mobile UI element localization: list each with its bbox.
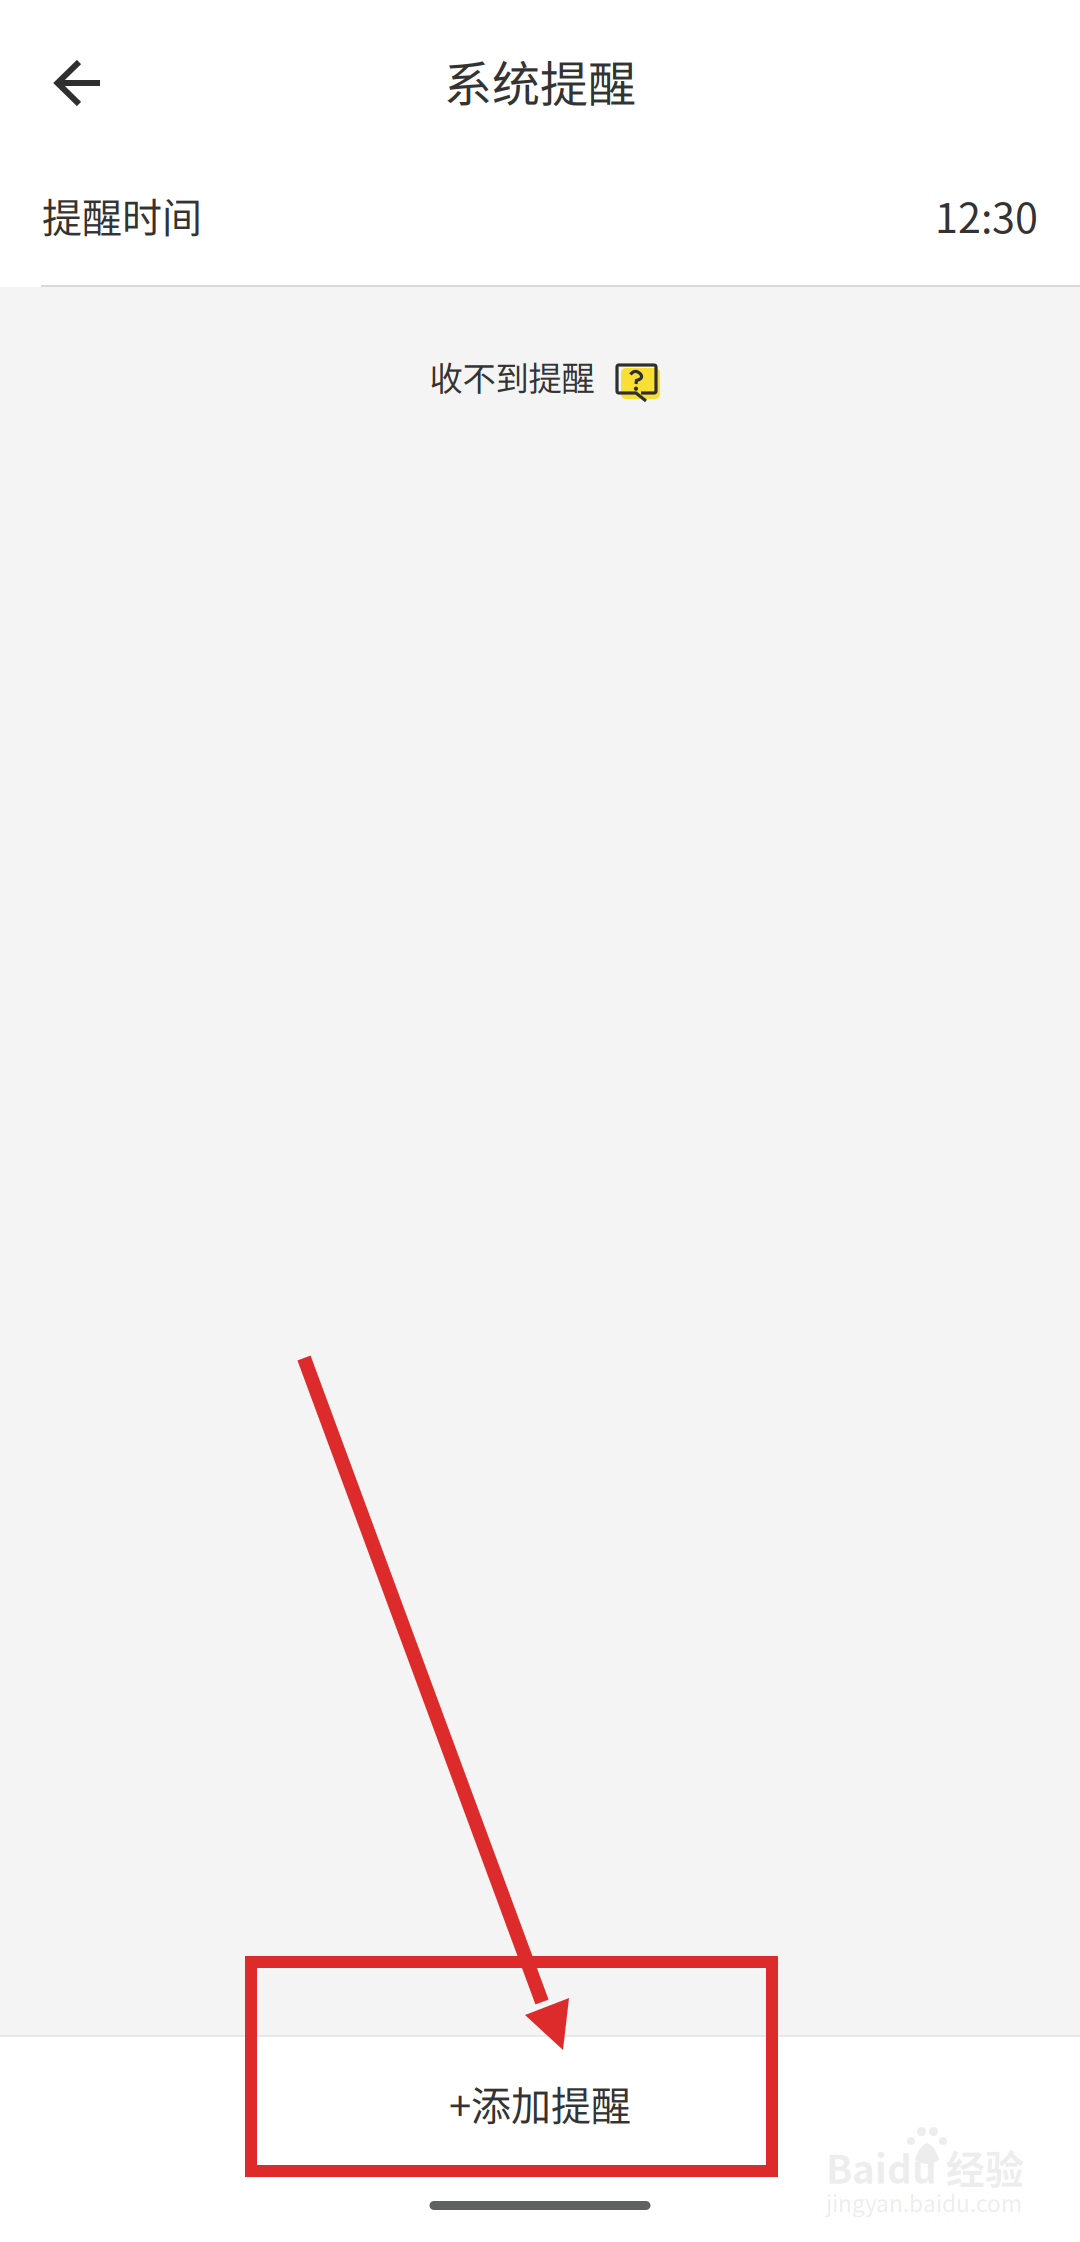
staticText: 12:30 xyxy=(935,185,1038,245)
staticText: +添加提醒 xyxy=(449,2074,631,2132)
button[interactable]: 提醒时间 xyxy=(0,153,1080,285)
staticText: jingyan.baidu.com xyxy=(826,2186,1022,2219)
staticText: 系统提醒 xyxy=(444,46,636,115)
staticText: 收不到提醒 xyxy=(429,352,594,400)
button[interactable]: Back xyxy=(0,21,138,132)
staticText: Baidu 经验 xyxy=(826,2139,1024,2195)
staticText: 提醒时间 xyxy=(42,186,202,244)
button[interactable]: +添加提醒 xyxy=(0,2037,1080,2169)
